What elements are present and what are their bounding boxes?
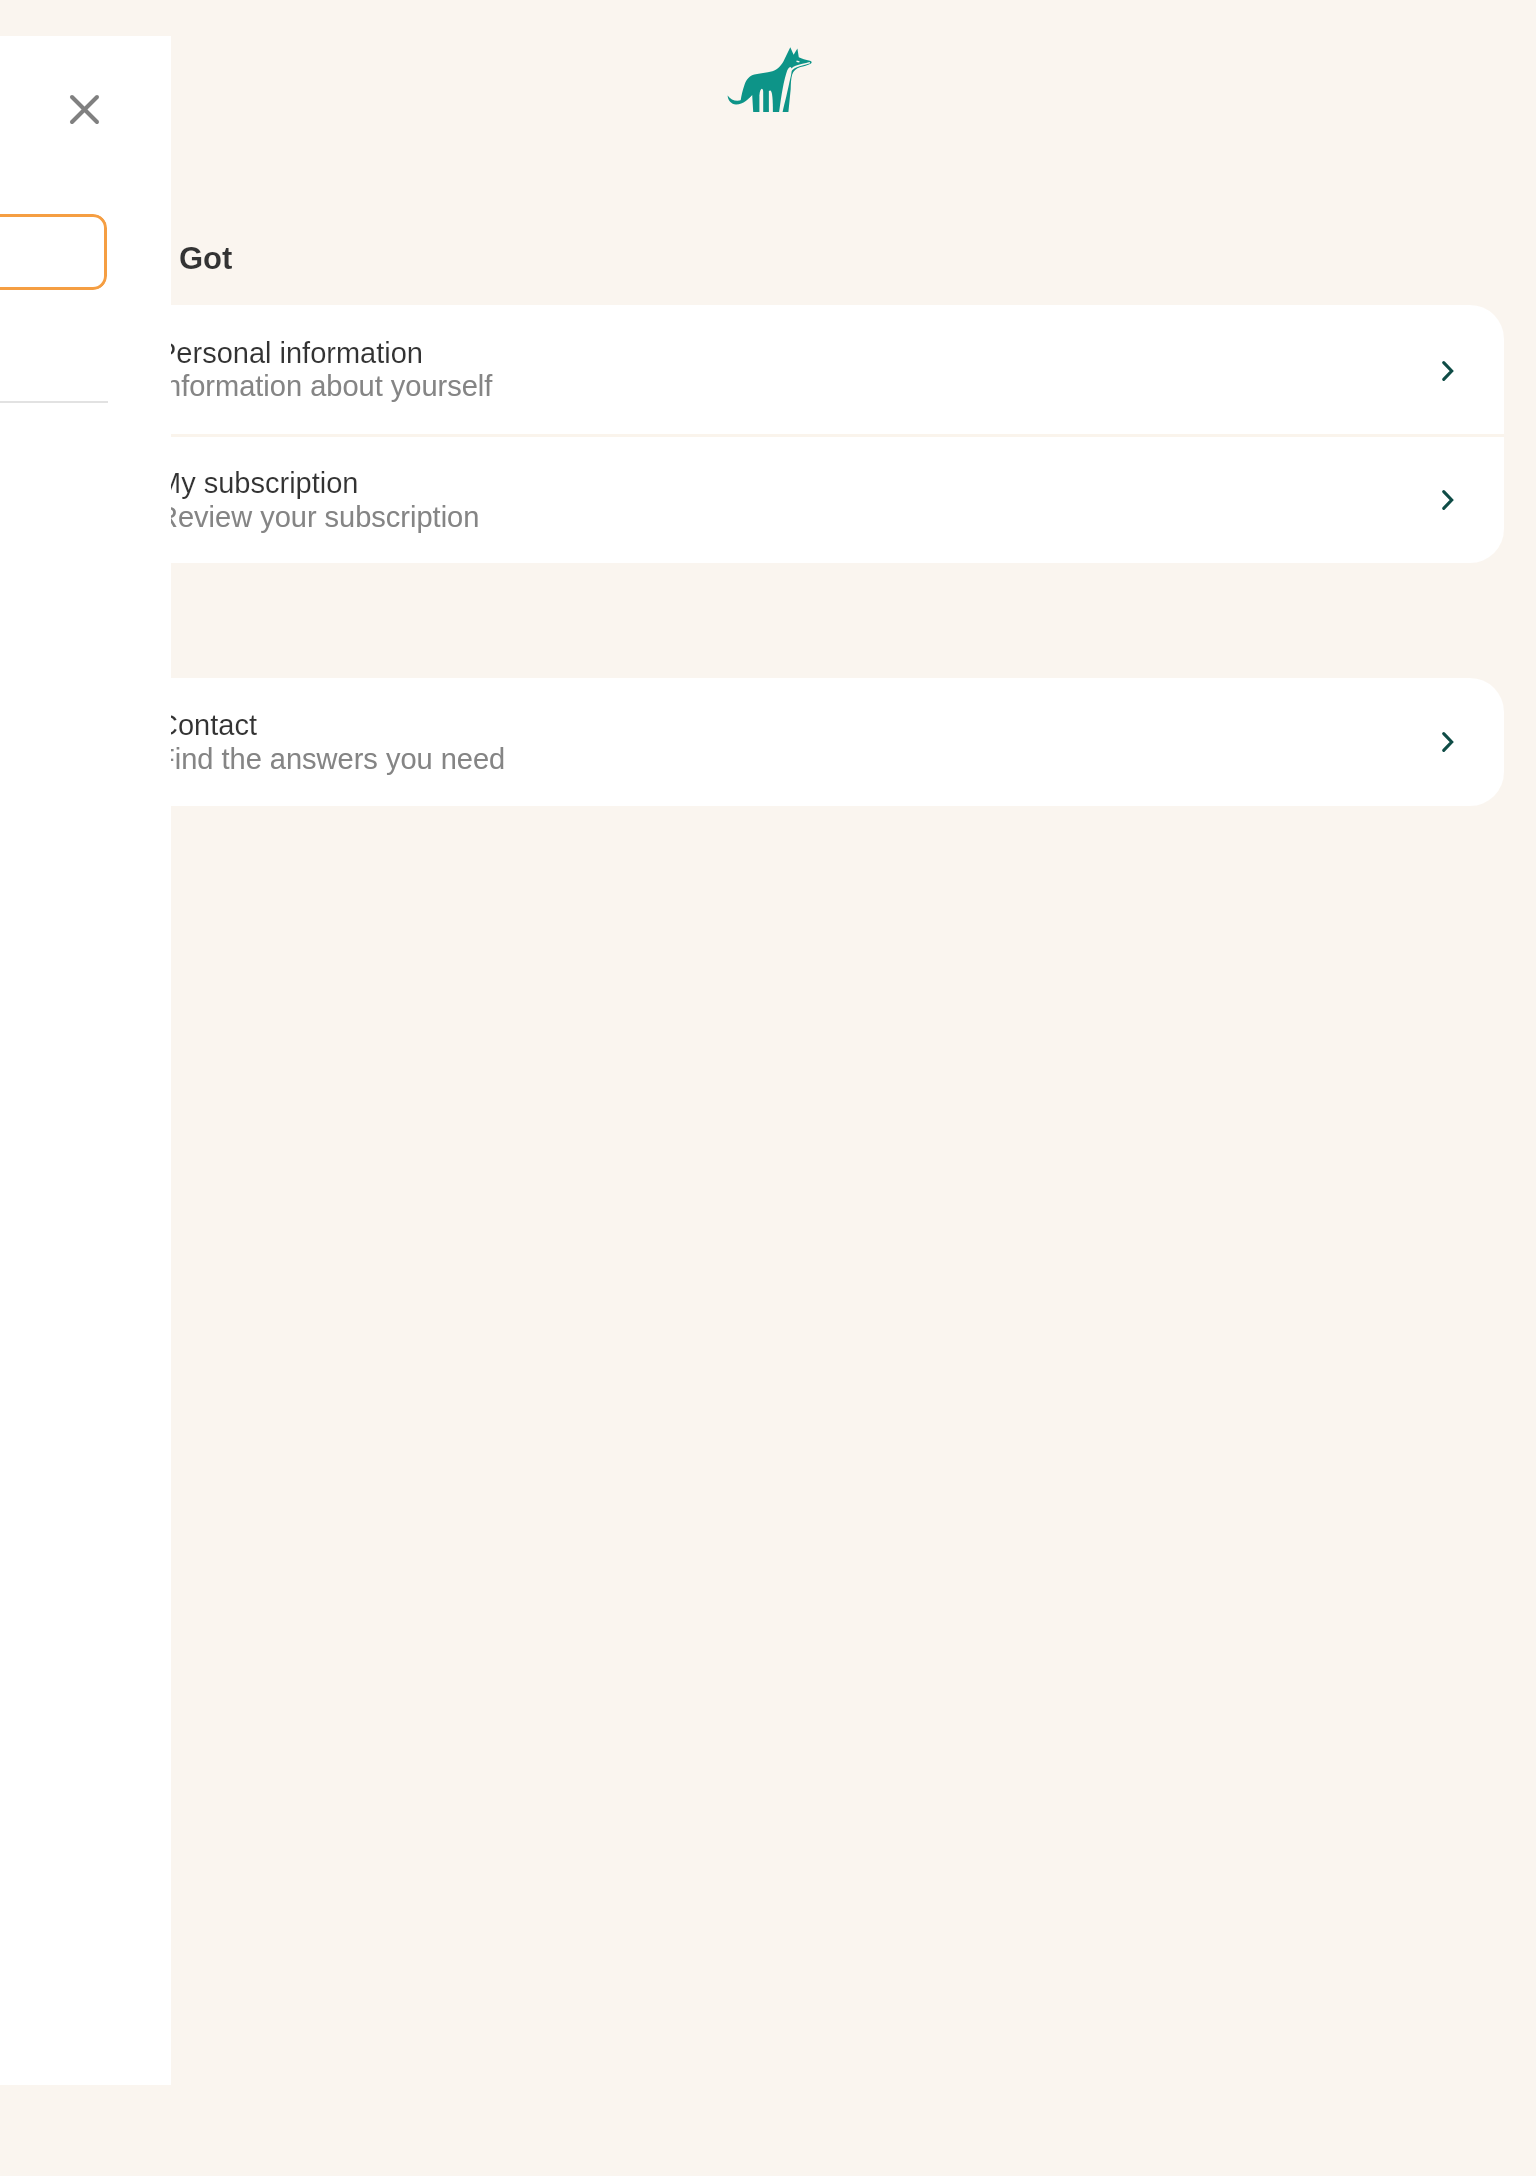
button[interactable]	[0, 214, 107, 290]
staticText: Got	[179, 241, 233, 276]
button[interactable]: My subscription	[32, 436, 1504, 563]
staticText: Personal information	[157, 337, 423, 369]
button[interactable]: Personal information	[32, 305, 1504, 434]
staticText: Information about yourself	[157, 370, 493, 402]
staticText: Find the answers you need	[157, 743, 506, 775]
staticText: My subscription	[157, 467, 359, 499]
staticText: Review your subscription	[157, 501, 480, 533]
staticText: Contact	[157, 709, 257, 741]
button[interactable]: Contact	[32, 678, 1504, 806]
button[interactable]: Close	[56, 81, 112, 137]
